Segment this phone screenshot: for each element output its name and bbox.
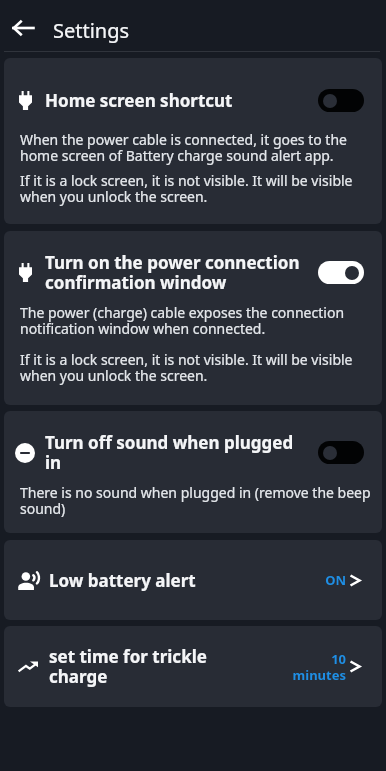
button[interactable]: set time for trickle charge: [4, 626, 382, 707]
button[interactable]: Off: [318, 441, 364, 464]
button[interactable]: Low battery alert: [4, 540, 382, 620]
staticText: There is no sound when plugged in (remov…: [20, 483, 377, 518]
staticText: Turn off sound when plugged in: [45, 431, 310, 474]
staticText: If it is a lock screen, it is not visibl…: [20, 171, 377, 206]
staticText: Turn on the power connection confirmatio…: [45, 251, 310, 294]
button[interactable]: Back: [0, 0, 47, 51]
staticText: When the power cable is connected, it go…: [20, 130, 377, 165]
staticText: Home screen shortcut: [45, 89, 310, 112]
staticText: The power (charge) cable exposes the con…: [20, 303, 377, 338]
button[interactable]: On: [318, 261, 364, 284]
staticText: Low battery alert: [49, 569, 317, 592]
staticText: Settings: [53, 17, 130, 44]
staticText: ON: [325, 571, 346, 589]
staticText: If it is a lock screen, it is not visibl…: [20, 350, 377, 385]
button[interactable]: Off: [318, 89, 364, 112]
staticText: 10 minutes: [276, 650, 346, 683]
staticText: set time for trickle charge: [49, 645, 268, 688]
